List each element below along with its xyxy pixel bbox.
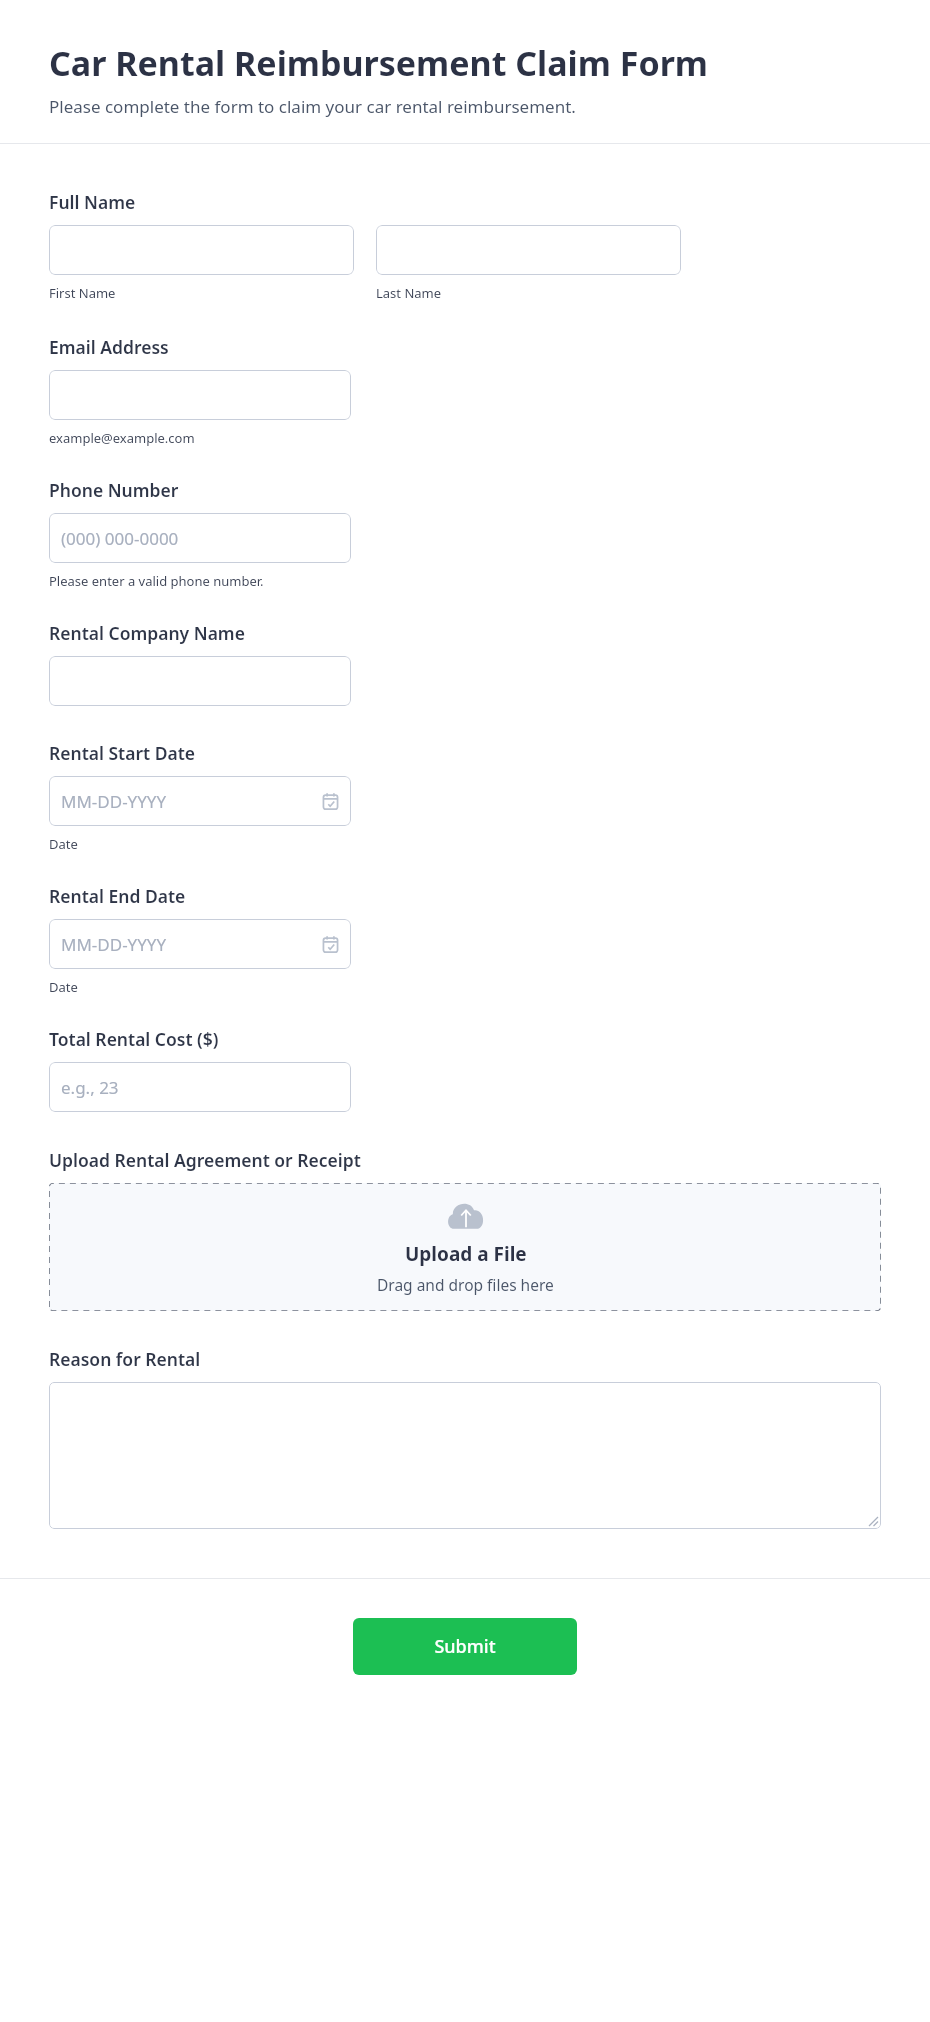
staticText: MM-DD-YYYY [61,933,167,956]
staticText: Phone Number [49,478,179,502]
staticText: Drag and drop files here [377,1274,554,1295]
staticText: Please enter a valid phone number. [49,572,264,590]
staticText: Upload a File [405,1241,527,1267]
staticText: e.g., 23 [61,1076,119,1099]
staticText: Please complete the form to claim your c… [49,95,576,118]
staticText: MM-DD-YYYY [61,790,167,813]
button[interactable]: Submit [353,1618,577,1675]
staticText: Date [49,978,78,996]
staticText: Email Address [49,335,169,359]
button[interactable]: Rental Start Date [49,776,351,826]
staticText: Rental Start Date [49,741,196,765]
staticText: Last Name [376,284,442,302]
button[interactable]: Rental End Date [49,919,351,969]
button[interactable]: Upload a File [49,1183,881,1311]
staticText: example@example.com [49,429,195,447]
button[interactable]: Reason for Rental [49,1382,881,1529]
staticText: Total Rental Cost ($) [49,1027,219,1051]
staticText: Car Rental Reimbursement Claim Form [49,40,708,86]
staticText: Submit [434,1634,496,1659]
staticText: First Name [49,284,116,302]
staticText: Rental End Date [49,884,186,908]
staticText: Full Name [49,190,136,214]
staticText: Date [49,835,78,853]
button[interactable]: First Name [49,225,354,275]
staticText: Upload Rental Agreement or Receipt [49,1148,361,1172]
staticText: Rental Company Name [49,621,245,645]
button[interactable]: Total Rental Cost [49,1062,351,1112]
button[interactable]: Phone Number [49,513,351,563]
button[interactable]: Rental Company Name [49,656,351,706]
staticText: (000) 000-0000 [61,527,179,550]
button[interactable]: Email Address [49,370,351,420]
button[interactable]: Last Name [376,225,681,275]
staticText: Reason for Rental [49,1347,201,1371]
